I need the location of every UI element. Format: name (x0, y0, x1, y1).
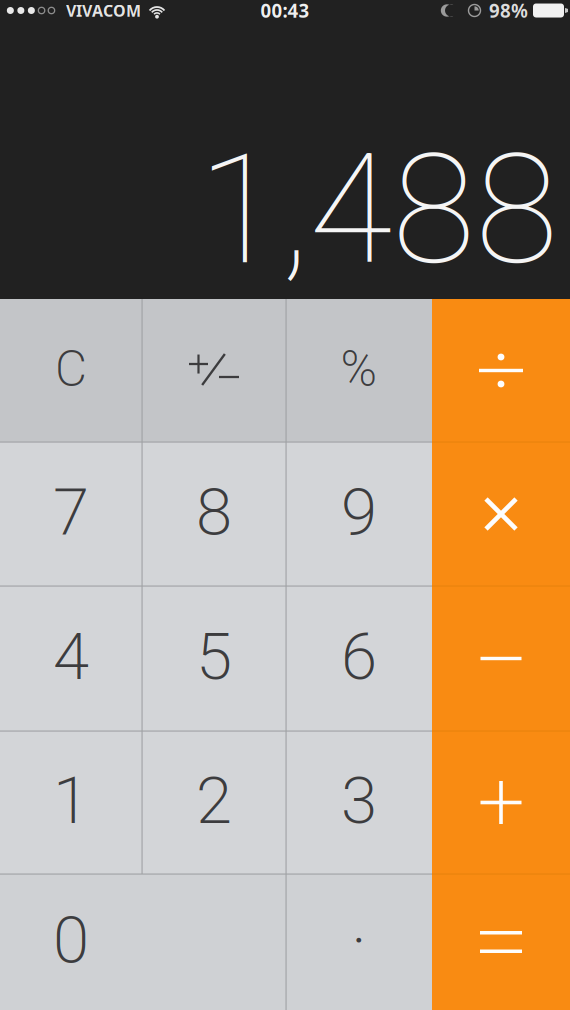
button[interactable]: 5 (142, 586, 286, 731)
button[interactable]: 9 (286, 442, 432, 586)
button[interactable]: 6 (286, 586, 432, 731)
button[interactable]: 3 (286, 731, 432, 874)
button[interactable]: C (0, 299, 142, 442)
staticText: 0 (53, 894, 89, 990)
button[interactable]: 7 (0, 442, 142, 586)
staticText: 1,488 (198, 103, 558, 326)
staticText: 98% (489, 0, 528, 23)
staticText: 3 (341, 754, 377, 850)
staticText: 5 (196, 610, 232, 706)
staticText: 8 (196, 466, 232, 562)
staticText: 1 (53, 754, 89, 850)
button[interactable]: Multiply (432, 442, 570, 586)
staticText: 00:43 (260, 0, 309, 23)
button[interactable]: 2 (142, 731, 286, 874)
button[interactable]: 8 (142, 442, 286, 586)
button[interactable]: 1 (0, 731, 142, 874)
button[interactable]: 4 (0, 586, 142, 731)
button[interactable]: Minus (432, 586, 570, 731)
button[interactable]: Equals (432, 874, 570, 1010)
button[interactable]: % (286, 299, 432, 442)
staticText: % (340, 334, 377, 407)
staticText: 7 (53, 466, 89, 562)
staticText: 9 (341, 466, 377, 562)
staticText: 4 (53, 610, 89, 706)
staticText: C (55, 334, 87, 407)
staticText: VIVACOM (66, 0, 141, 21)
button[interactable]: · (286, 874, 432, 1010)
button[interactable]: 0 (0, 874, 286, 1010)
button[interactable]: Plus Minus (142, 299, 286, 442)
staticText: 6 (341, 610, 377, 706)
button[interactable]: Divide (432, 299, 570, 442)
staticText: · (351, 894, 367, 990)
staticText: 2 (196, 754, 232, 850)
button[interactable]: Plus (432, 731, 570, 874)
